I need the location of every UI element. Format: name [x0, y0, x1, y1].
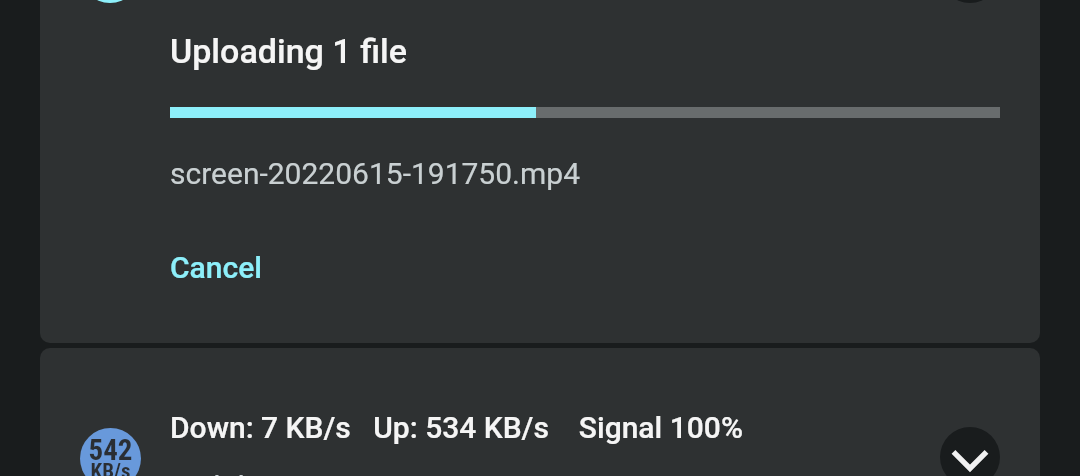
button[interactable]: 542 [40, 348, 1040, 476]
button[interactable]: Collapse notification [40, 0, 1040, 343]
staticText: screen-20220615-191750.mp4 [170, 156, 581, 191]
staticText: mobile connection [170, 469, 417, 476]
staticText: 542 [80, 433, 141, 467]
staticText: Down: 7 KB/s Up: 534 KB/s Signal 100% [170, 410, 743, 445]
staticText: Uploading 1 file [170, 31, 407, 71]
staticText: Cancel [170, 250, 263, 285]
button[interactable]: Expand notification [940, 427, 1000, 476]
staticText: KB/s [80, 459, 141, 476]
button[interactable]: Cancel [156, 238, 277, 293]
button[interactable]: Collapse notification [940, 0, 1000, 3]
